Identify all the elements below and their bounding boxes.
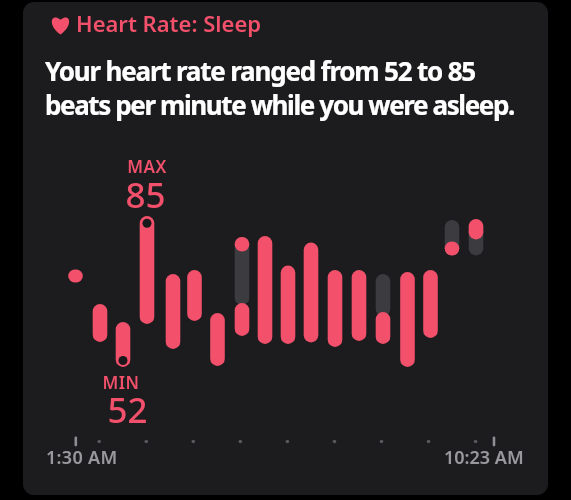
button[interactable]: [23, 2, 548, 495]
staticText: beats per minute while you were asleep.: [45, 87, 514, 122]
staticText: 1:30 AM: [46, 445, 118, 470]
staticText: MIN: [102, 371, 140, 394]
staticText: MAX: [127, 155, 167, 178]
staticText: Your heart rate ranged from 52 to 85: [45, 53, 476, 88]
staticText: Heart Rate: Sleep: [76, 8, 262, 38]
staticText: 10:23 AM: [444, 445, 524, 470]
staticText: 85: [125, 171, 166, 219]
staticText: 52: [107, 386, 148, 434]
